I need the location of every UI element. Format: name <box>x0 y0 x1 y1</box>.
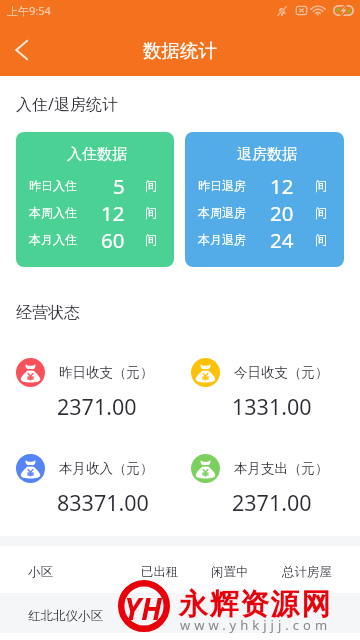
staticText: 昨日退房 <box>198 178 246 193</box>
staticText: 间 <box>145 205 157 220</box>
staticText: 退房数据 <box>237 145 297 164</box>
staticText: 经营状态 <box>16 303 80 323</box>
button[interactable]: 红北北仪小区 <box>0 593 360 633</box>
button[interactable]: 本月收入（元） <box>16 454 176 519</box>
staticText: 本月退房 <box>198 232 246 247</box>
staticText: 12 <box>270 172 294 199</box>
staticText: 本月入住 <box>29 232 77 247</box>
staticText: 上午9:54 <box>7 3 51 18</box>
staticText: 本月收入（元） <box>59 460 154 477</box>
staticText: 间 <box>315 178 327 193</box>
button[interactable]: 昨日收支（元） <box>16 358 176 423</box>
staticText: 24 <box>270 226 294 253</box>
staticText: 入住数据 <box>67 145 127 164</box>
button[interactable]: 入住数据 <box>16 132 174 267</box>
staticText: www.yhkjjj.com <box>180 616 332 634</box>
button[interactable]: Back <box>0 26 44 70</box>
staticText: 入住/退房统计 <box>16 93 118 115</box>
staticText: YH <box>124 588 162 629</box>
staticText: 红北北仪小区 <box>28 608 103 624</box>
staticText: 数据统计 <box>143 39 217 62</box>
staticText: 永辉资源网 <box>178 586 331 623</box>
button[interactable]: 退房数据 <box>185 132 344 267</box>
staticText: 1331.00 <box>232 392 312 421</box>
staticText: 间 <box>145 178 157 193</box>
staticText: 总计房屋 <box>282 564 332 580</box>
staticText: 已出租 <box>141 564 179 580</box>
button[interactable]: 小区 <box>0 546 360 593</box>
staticText: 今日收支（元） <box>234 364 329 381</box>
staticText: 12 <box>101 199 125 226</box>
staticText: 2371.00 <box>57 392 137 421</box>
button[interactable]: 本月支出（元） <box>191 454 351 519</box>
staticText: 小区 <box>28 564 53 580</box>
staticText: 2371.00 <box>232 488 312 517</box>
staticText: 5 <box>113 172 125 199</box>
staticText: 60 <box>101 226 125 253</box>
button[interactable]: 今日收支（元） <box>191 358 351 423</box>
staticText: 间 <box>315 205 327 220</box>
staticText: 昨日收支（元） <box>59 364 154 381</box>
staticText: 20 <box>270 199 294 226</box>
staticText: 间 <box>315 232 327 247</box>
staticText: 昨日入住 <box>29 178 77 193</box>
staticText: 本周入住 <box>29 205 77 220</box>
staticText: 闲置中 <box>211 564 249 580</box>
staticText: 本月支出（元） <box>234 460 329 477</box>
staticText: 本周退房 <box>198 205 246 220</box>
staticText: 83371.00 <box>57 488 149 517</box>
staticText: 间 <box>145 232 157 247</box>
